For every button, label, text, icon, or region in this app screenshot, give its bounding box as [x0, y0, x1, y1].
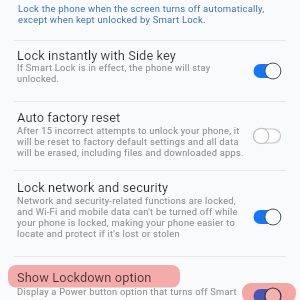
button[interactable] — [0, 40, 300, 101]
staticText: Display a Power button option that turns… — [17, 286, 237, 297]
staticText: Show Lockdown option — [17, 270, 152, 285]
staticText: Lock instantly with Side key — [17, 48, 177, 63]
button[interactable] — [249, 61, 285, 81]
button[interactable] — [0, 101, 300, 170]
staticText: Lock network and security — [17, 180, 169, 195]
button[interactable] — [249, 207, 285, 227]
staticText: After 15 incorrect attempts to unlock yo… — [17, 125, 244, 158]
button[interactable] — [249, 286, 289, 300]
button[interactable] — [0, 170, 300, 256]
staticText: Auto factory reset — [17, 110, 121, 125]
button[interactable] — [249, 126, 285, 146]
staticText: Network and security-related functions a… — [17, 195, 238, 239]
staticText: If Smart Lock is in effect, the phone wi… — [17, 62, 211, 84]
button[interactable] — [0, 256, 300, 300]
staticText: Lock the phone when the screen turns off… — [18, 3, 265, 26]
